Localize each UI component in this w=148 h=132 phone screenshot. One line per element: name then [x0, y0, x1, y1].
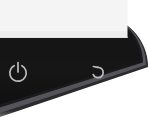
button[interactable]: Back: [84, 59, 112, 87]
button[interactable]: Power: [4, 59, 32, 87]
